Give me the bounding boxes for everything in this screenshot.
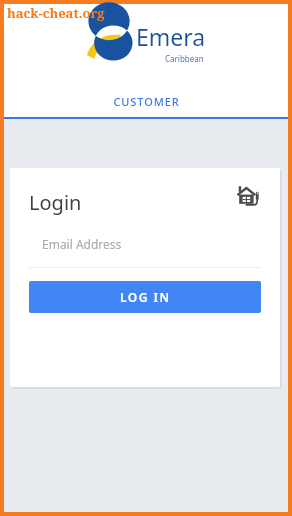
staticText: Caribbean [165, 53, 204, 64]
button[interactable]: CUSTOMER [4, 85, 288, 117]
staticText: CUSTOMER [113, 94, 180, 109]
staticText: Emera [136, 21, 206, 52]
staticText: LOG IN [120, 289, 171, 305]
staticText: hack-cheat.org [7, 4, 105, 22]
button[interactable]: Email Address [29, 230, 261, 258]
button[interactable]: LOG IN [29, 281, 261, 313]
staticText: Email Address [42, 236, 122, 252]
staticText: Login [29, 189, 82, 216]
other: Home energy [234, 184, 261, 211]
